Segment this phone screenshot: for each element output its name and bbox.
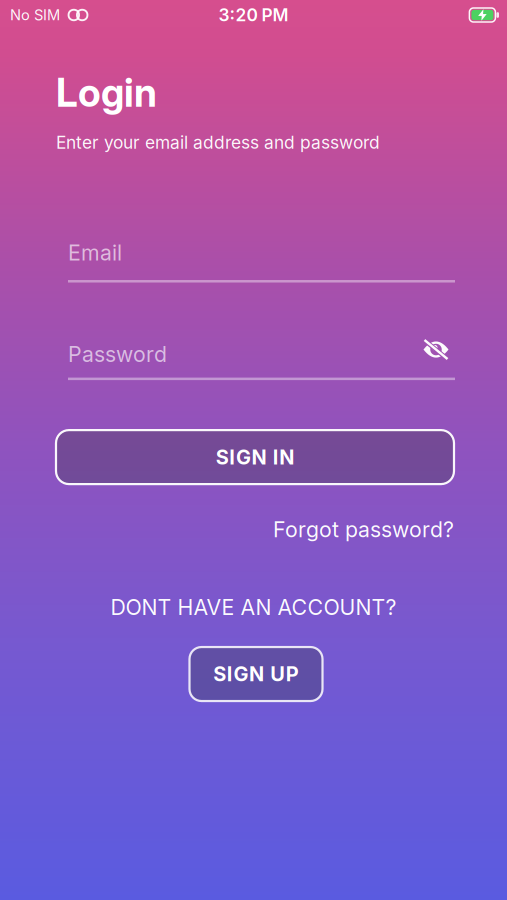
staticText: 3:20 PM	[218, 5, 288, 25]
button[interactable]: Password	[68, 341, 455, 380]
staticText: SIGN IN	[216, 445, 294, 469]
button[interactable]: Email	[68, 240, 455, 283]
button[interactable]: SIGN IN	[56, 430, 454, 484]
button[interactable]: Show password	[423, 338, 449, 360]
staticText: SIGN UP	[213, 662, 299, 686]
staticText: DONT HAVE AN ACCOUNT?	[110, 595, 396, 620]
staticText: Password	[68, 341, 167, 367]
staticText: Enter your email address and password	[56, 132, 380, 152]
button[interactable]: Forgot password?	[273, 517, 454, 542]
staticText: Login	[56, 70, 157, 116]
staticText: Email	[68, 240, 122, 265]
staticText: No SIM	[10, 6, 60, 24]
button[interactable]: SIGN UP	[189, 647, 322, 701]
staticText: Forgot password?	[273, 517, 454, 542]
